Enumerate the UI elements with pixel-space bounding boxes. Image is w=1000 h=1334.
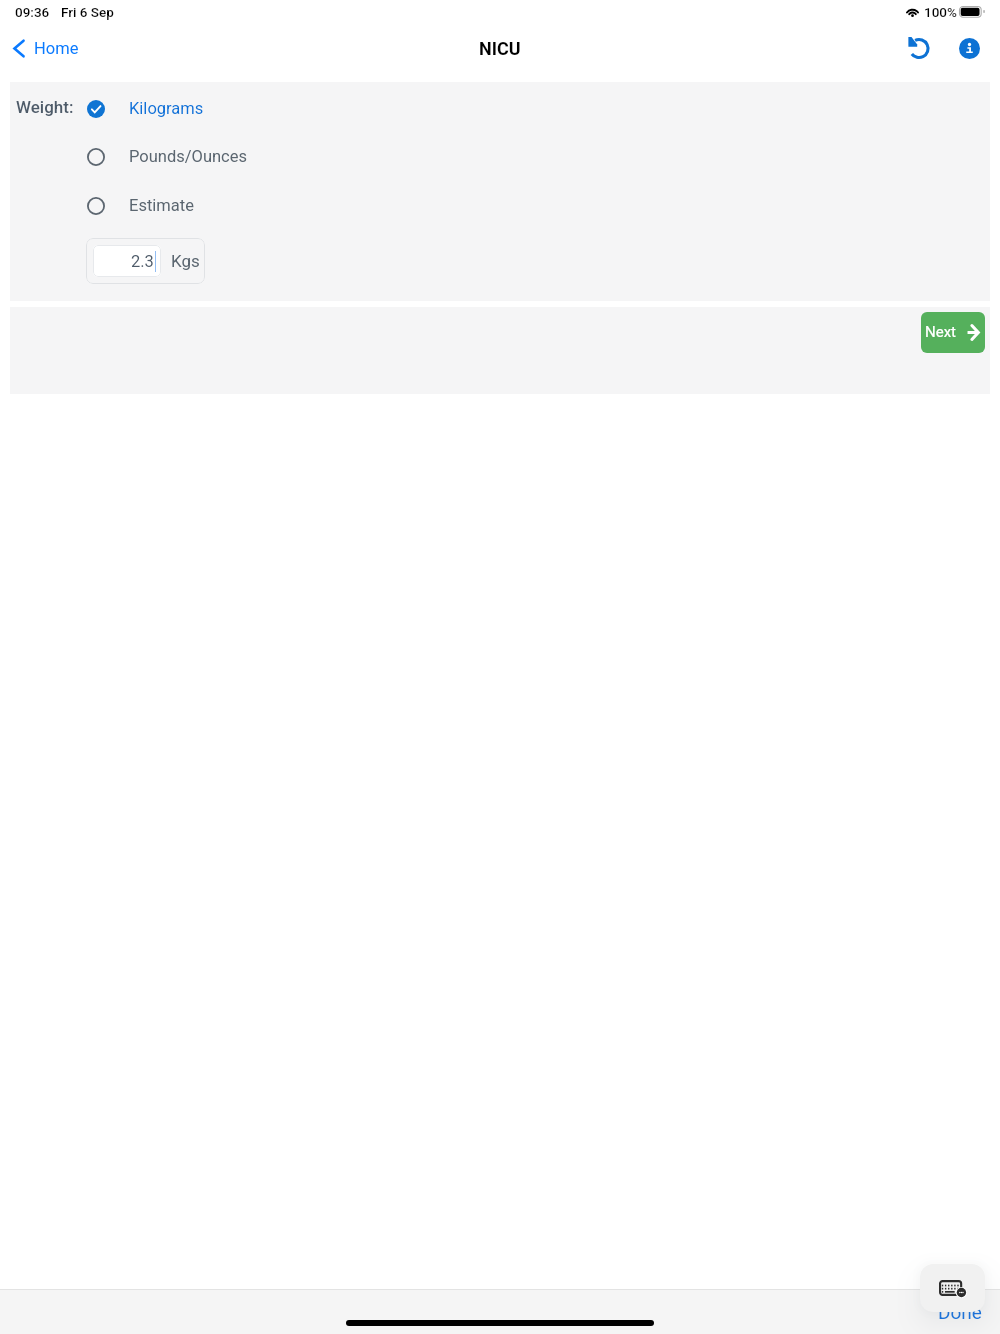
staticText: 2.3 <box>131 252 154 271</box>
staticText: Pounds/Ounces <box>129 147 248 166</box>
staticText: 100% <box>924 4 957 20</box>
button[interactable]: Undo <box>900 29 938 67</box>
staticText: Kilograms <box>129 99 204 118</box>
button[interactable]: Done <box>938 1301 982 1323</box>
button[interactable]: Information <box>950 29 988 67</box>
button[interactable]: Pounds/Ounces <box>80 133 262 181</box>
staticText: Home <box>34 39 79 58</box>
button[interactable]: Kilograms <box>80 85 218 133</box>
staticText: NICU <box>479 38 521 59</box>
button[interactable]: 2.3 <box>93 245 161 277</box>
staticText: Next <box>925 323 957 341</box>
button[interactable]: Estimate <box>80 182 208 230</box>
button[interactable]: Hide keyboard <box>920 1264 985 1312</box>
staticText: Kgs <box>171 251 200 271</box>
staticText: 09:36 <box>15 4 50 20</box>
button[interactable]: Home <box>5 28 87 68</box>
staticText: Fri 6 Sep <box>61 4 114 20</box>
staticText: Weight: <box>16 97 74 117</box>
staticText: Estimate <box>129 196 194 215</box>
button[interactable]: Next <box>921 312 985 353</box>
